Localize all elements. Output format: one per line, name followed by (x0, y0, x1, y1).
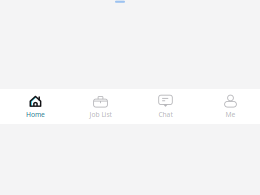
button[interactable]: Chat (133, 88, 198, 125)
button[interactable]: Job List (68, 88, 133, 125)
button[interactable]: Me (198, 88, 260, 125)
button[interactable]: Home (3, 88, 68, 125)
staticText: Home (26, 110, 45, 119)
staticText: Me (225, 110, 235, 119)
staticText: Chat (158, 110, 172, 119)
staticText: Job List (89, 110, 111, 119)
